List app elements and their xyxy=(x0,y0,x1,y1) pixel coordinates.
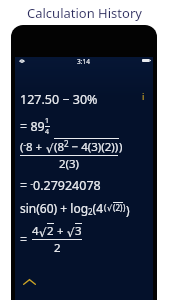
staticText: 4 xyxy=(32,223,39,239)
staticText: 2(3) xyxy=(59,156,80,172)
staticText: ) xyxy=(119,139,123,155)
staticText: ) xyxy=(126,202,130,218)
staticText: 3 xyxy=(75,223,82,239)
button[interactable]: Scroll up xyxy=(23,279,36,285)
staticText: √ xyxy=(46,142,54,155)
staticText: √ xyxy=(107,204,113,213)
staticText: = 89 xyxy=(20,118,45,135)
staticText: 2 xyxy=(47,223,54,239)
button[interactable]: Info xyxy=(137,90,149,102)
staticText: ) xyxy=(123,202,126,213)
staticText: 4 xyxy=(45,127,50,137)
staticText: i xyxy=(142,90,145,102)
staticText: √ xyxy=(67,226,75,239)
staticText: + xyxy=(54,223,67,239)
staticText: Calculation History xyxy=(27,4,142,22)
staticText: 127.50 − 30% xyxy=(20,91,98,108)
staticText: ( xyxy=(104,202,107,213)
staticText: (82 − 4(3)(2)) xyxy=(54,138,119,155)
staticText: = xyxy=(20,231,28,248)
staticText: 3:14 xyxy=(77,57,90,66)
staticText: (2) xyxy=(113,202,123,213)
staticText: 1 xyxy=(45,116,50,126)
staticText: √ xyxy=(39,226,47,239)
staticText: 2 xyxy=(54,240,61,256)
staticText: (-8 + xyxy=(20,139,46,155)
staticText: sin(60) + log2(4 xyxy=(20,200,104,218)
staticText: = -0.27924078 xyxy=(20,177,101,194)
